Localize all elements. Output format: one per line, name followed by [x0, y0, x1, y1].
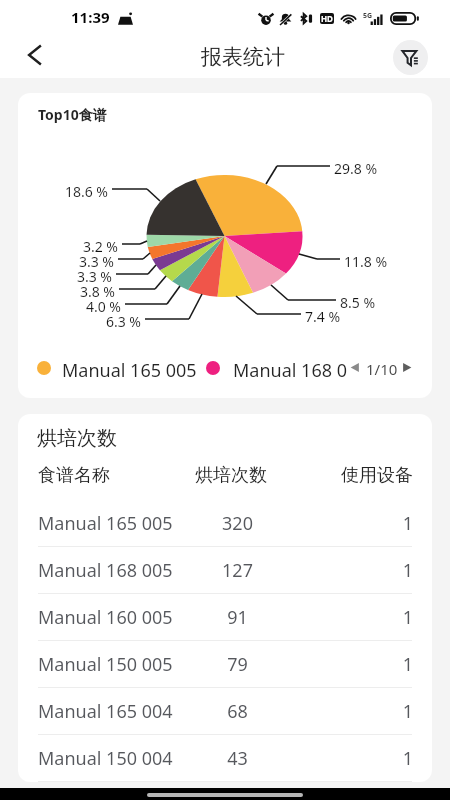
staticText: 食谱名称	[38, 464, 195, 487]
staticText: HD	[321, 13, 333, 24]
staticText: 5G	[363, 11, 373, 21]
staticText: 3.2 %	[58, 237, 118, 256]
staticText: 1	[280, 558, 413, 583]
staticText: 29.8 %	[334, 159, 378, 178]
staticText: Manual 160 005	[38, 605, 195, 630]
staticText: 烘培次数	[37, 426, 117, 451]
staticText: 7.4 %	[305, 307, 341, 326]
staticText: Top10食谱	[38, 105, 107, 124]
staticText: 3.3 %	[54, 252, 114, 271]
staticText: 4.0 %	[61, 297, 121, 316]
staticText: 1	[280, 699, 413, 724]
button[interactable]: Manual 165 004	[18, 688, 432, 734]
staticText: 3.8 %	[55, 282, 115, 301]
staticText: 8.5 %	[340, 293, 376, 312]
staticText: 6.3 %	[81, 312, 141, 331]
staticText: 1/10	[366, 359, 398, 379]
staticText: Manual 150 005	[38, 652, 195, 677]
staticText: 91	[195, 605, 280, 630]
staticText: 11.8 %	[344, 252, 388, 271]
staticText: 43	[195, 746, 280, 771]
staticText: 1	[280, 511, 413, 536]
button[interactable]: Manual 150 004	[18, 735, 432, 781]
staticText: 1	[280, 605, 413, 630]
staticText: 使用设备	[341, 464, 413, 487]
button[interactable]: Manual 168 005	[18, 547, 432, 593]
button[interactable]: Back	[13, 36, 55, 78]
button[interactable]: Manual 150 005	[18, 641, 432, 687]
staticText: 1	[280, 652, 413, 677]
staticText: 79	[195, 652, 280, 677]
staticText: Manual 168 005	[38, 558, 195, 583]
staticText: Manual 165 005	[38, 511, 195, 536]
staticText: 烘培次数	[195, 464, 341, 487]
staticText: Manual 150 004	[38, 746, 195, 771]
staticText: Manual 165 004	[38, 699, 195, 724]
staticText: 68	[195, 699, 280, 724]
staticText: 3.3 %	[52, 267, 112, 286]
staticText: 报表统计	[201, 44, 285, 70]
button[interactable]: Manual 160 005	[18, 594, 432, 640]
staticText: 18.6 %	[48, 182, 108, 201]
staticText: Manual 165 005	[62, 358, 197, 383]
staticText: 127	[195, 558, 280, 583]
staticText: 11:39	[71, 7, 110, 27]
button[interactable]: Manual 165 005	[18, 500, 432, 546]
staticText: 320	[195, 511, 280, 536]
staticText: 1	[280, 746, 413, 771]
button[interactable]: Filter	[393, 40, 428, 75]
staticText: Manual 168 0	[233, 358, 347, 383]
